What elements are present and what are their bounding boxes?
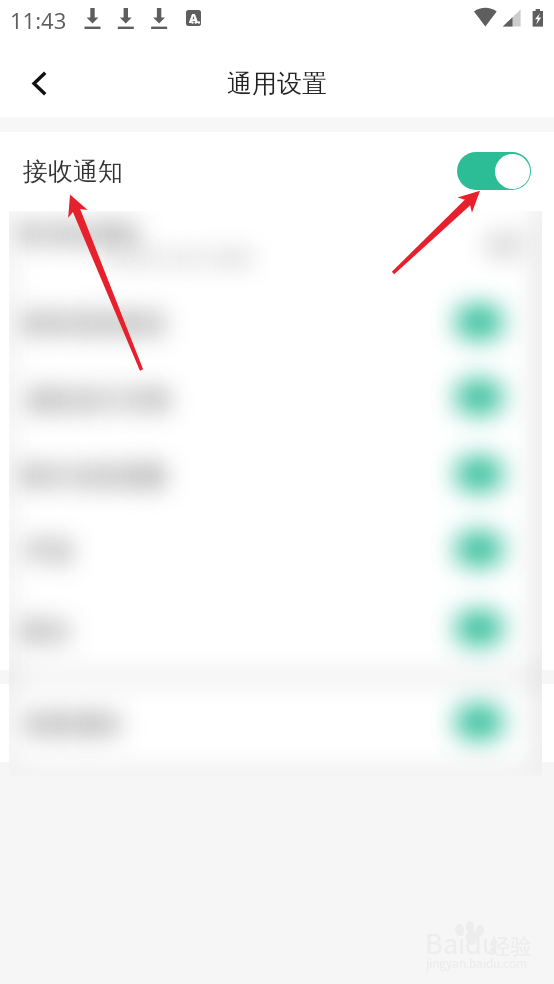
staticText: 接收通知 — [23, 156, 123, 187]
staticText: 11:43 — [10, 5, 67, 35]
staticText: 通用设置 — [227, 68, 327, 99]
staticText: A — [189, 10, 198, 25]
button[interactable]: Receive notifications — [457, 152, 531, 190]
button[interactable]: Back — [0, 48, 66, 114]
